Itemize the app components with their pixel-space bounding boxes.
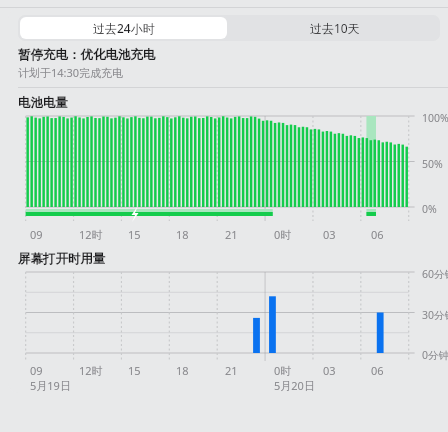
staticText: 0时: [274, 363, 292, 378]
staticText: 18: [176, 363, 189, 378]
staticText: 电池电量: [18, 95, 68, 111]
staticText: 暂停充电：优化电池充电: [18, 47, 156, 63]
staticText: 15: [128, 227, 141, 242]
staticText: 06: [371, 363, 384, 378]
staticText: 03: [323, 363, 336, 378]
staticText: 0时: [274, 227, 292, 242]
staticText: 屏幕打开时用量: [18, 251, 106, 267]
staticText: 12时: [79, 363, 103, 378]
staticText: 06: [371, 227, 384, 242]
staticText: 18: [176, 227, 189, 242]
staticText: 计划于14:30完成充电: [18, 65, 124, 80]
staticText: 09: [30, 363, 43, 378]
staticText: 过去10天: [310, 20, 360, 36]
staticText: 100%: [422, 111, 448, 125]
staticText: 09: [30, 227, 43, 242]
staticText: 60分钟: [422, 267, 448, 281]
staticText: 50%: [422, 157, 443, 171]
staticText: 21: [225, 363, 238, 378]
staticText: 21: [225, 227, 238, 242]
staticText: 30分钟: [422, 308, 448, 322]
staticText: 03: [323, 227, 336, 242]
staticText: 过去24小时: [93, 20, 155, 36]
staticText: 0分钟: [422, 348, 448, 362]
staticText: 5月19日: [30, 378, 71, 393]
staticText: 5月20日: [274, 378, 315, 393]
button[interactable]: 过去10天: [229, 15, 440, 41]
staticText: 12时: [79, 227, 103, 242]
staticText: 15: [128, 363, 141, 378]
button[interactable]: 过去24小时: [20, 17, 227, 39]
staticText: 0%: [422, 202, 437, 216]
